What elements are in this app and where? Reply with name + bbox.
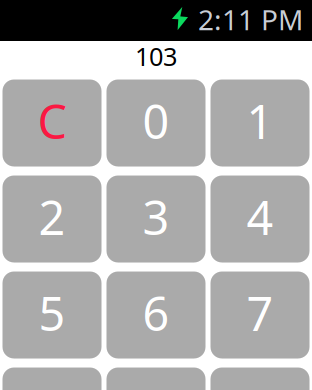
button[interactable]: 0	[106, 79, 205, 166]
staticText: C	[37, 90, 66, 152]
button[interactable]: 3	[106, 175, 205, 262]
staticText: 1	[246, 90, 273, 152]
staticText: 2:11 PM	[198, 1, 303, 38]
button[interactable]: 4	[210, 175, 309, 262]
staticText: 6	[142, 282, 169, 344]
button[interactable]: 6	[106, 271, 205, 358]
button[interactable]: 1	[210, 79, 309, 166]
button[interactable]: 5	[2, 271, 101, 358]
button[interactable]: 8	[2, 367, 101, 390]
staticText: 103	[135, 39, 177, 73]
staticText: 3	[142, 186, 169, 248]
staticText: 4	[246, 186, 273, 248]
button[interactable]: 7	[210, 271, 309, 358]
staticText: 7	[246, 282, 273, 344]
button[interactable]: 9	[106, 367, 205, 390]
button[interactable]: C	[2, 79, 101, 166]
staticText: 0	[142, 90, 169, 152]
staticText: 5	[38, 282, 65, 344]
button[interactable]: 2	[2, 175, 101, 262]
button[interactable]: +	[210, 367, 309, 390]
staticText: 2	[38, 186, 65, 248]
